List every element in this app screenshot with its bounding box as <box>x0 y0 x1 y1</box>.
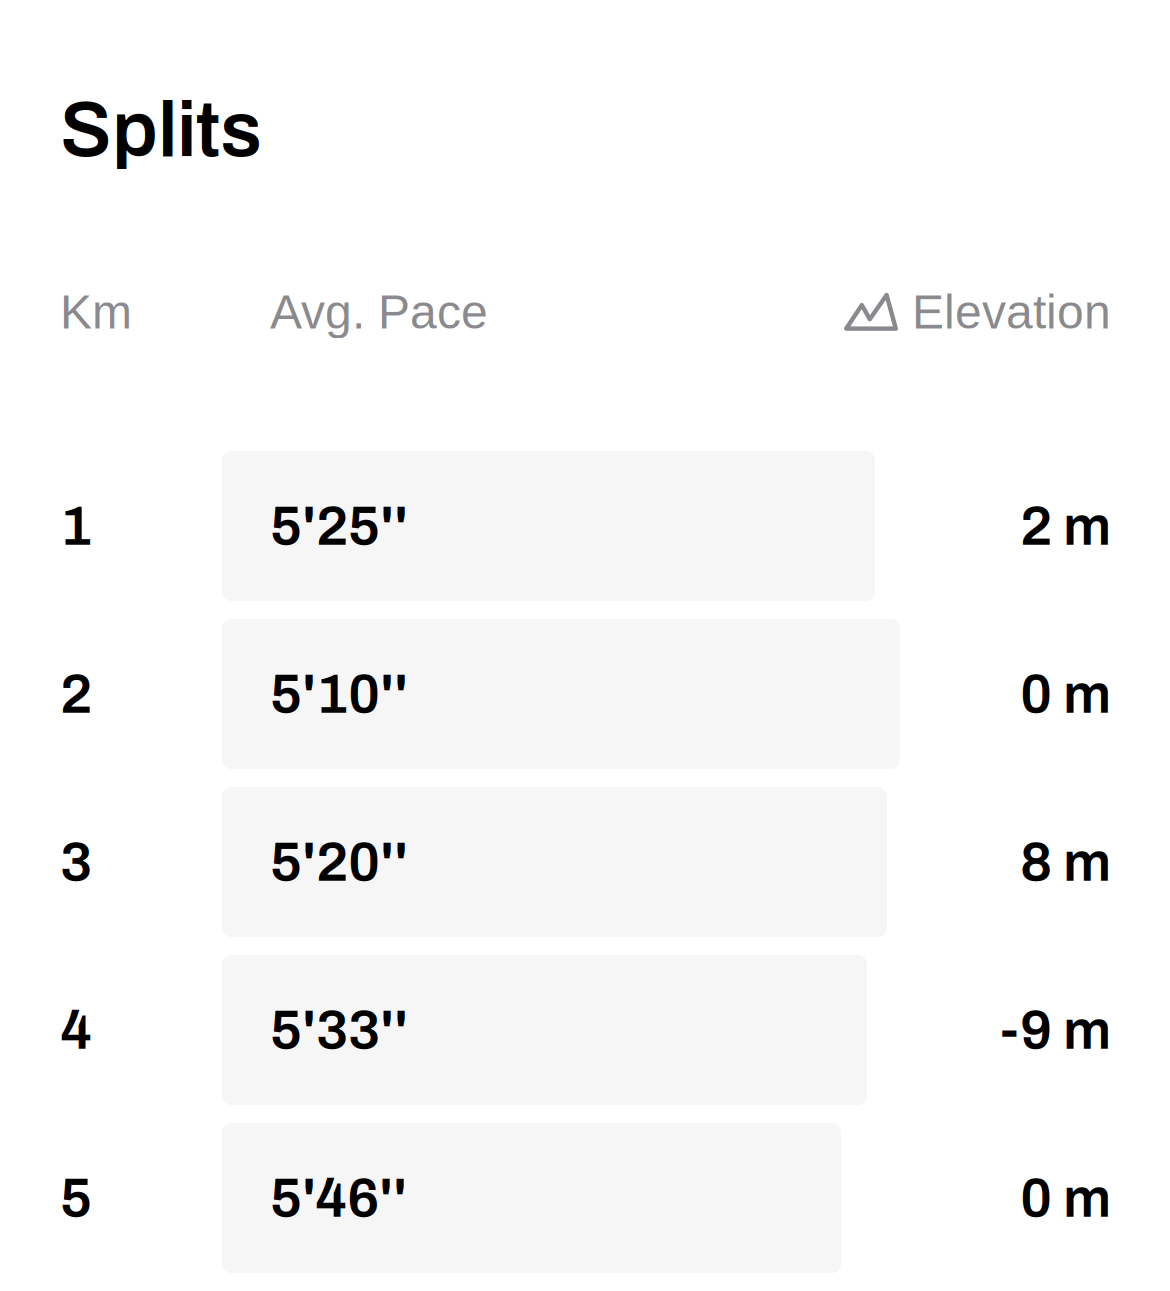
staticText: 5 <box>60 1167 92 1228</box>
staticText: 5'20'' <box>270 831 408 892</box>
staticText: 4 <box>60 999 92 1060</box>
staticText: 1 <box>60 495 92 556</box>
staticText: 3 <box>60 831 92 892</box>
staticText: 2 <box>60 663 92 724</box>
staticText: 5'10'' <box>270 663 408 724</box>
staticText: Avg. Pace <box>270 285 488 339</box>
staticText: 5'33'' <box>270 999 408 1060</box>
staticText: Km <box>60 285 132 339</box>
staticText: 0 m <box>1020 663 1111 724</box>
staticText: -9 m <box>1000 999 1111 1060</box>
button[interactable]: 3 <box>60 787 1111 937</box>
staticText: 8 m <box>1020 831 1111 892</box>
button[interactable]: 2 <box>60 619 1111 769</box>
button[interactable]: 1 <box>60 451 1111 601</box>
staticText: Splits <box>60 88 262 172</box>
staticText: 5'25'' <box>270 495 408 556</box>
staticText: 5'46'' <box>270 1167 407 1228</box>
staticText: Elevation <box>912 285 1111 339</box>
staticText: 2 m <box>1020 495 1111 556</box>
button[interactable]: 4 <box>60 955 1111 1105</box>
button[interactable]: 5 <box>60 1123 1111 1273</box>
staticText: 0 m <box>1020 1167 1111 1228</box>
